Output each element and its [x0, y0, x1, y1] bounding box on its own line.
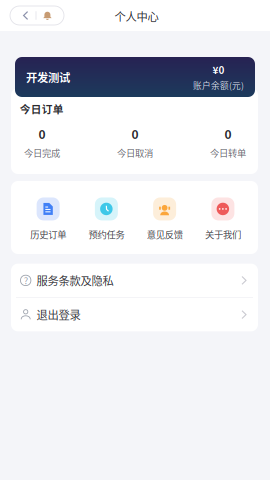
staticText: 意见反馈 [147, 227, 183, 241]
staticText: 服务条款及隐私 [36, 272, 113, 289]
staticText: 关于我们 [205, 227, 241, 241]
staticText: 0 [38, 125, 45, 142]
button[interactable]: Back and notifications [10, 6, 64, 25]
staticText: 今日转单 [210, 146, 246, 159]
staticText: ¥0 [212, 62, 224, 77]
button[interactable]: 意见反馈 [136, 198, 194, 241]
staticText: 预约任务 [88, 227, 124, 241]
button[interactable]: 历史订单 [19, 198, 77, 241]
staticText: 账户余额(元) [193, 79, 244, 91]
staticText: 退出登录 [36, 306, 80, 323]
staticText: 今日取消 [117, 146, 153, 159]
button[interactable]: 预约任务 [77, 198, 135, 241]
staticText: 0 [131, 125, 138, 142]
staticText: 今日完成 [24, 146, 60, 159]
staticText: 今日订单 [20, 101, 64, 116]
button[interactable]: ? [11, 264, 258, 297]
staticText: 0 [224, 125, 231, 142]
staticText: 个人中心 [114, 8, 158, 24]
button[interactable]: 关于我们 [194, 198, 252, 241]
button[interactable]: 退出登录 [11, 298, 258, 331]
staticText: ? [24, 273, 28, 287]
staticText: 历史订单 [30, 227, 66, 241]
staticText: 开发测试 [26, 69, 70, 85]
